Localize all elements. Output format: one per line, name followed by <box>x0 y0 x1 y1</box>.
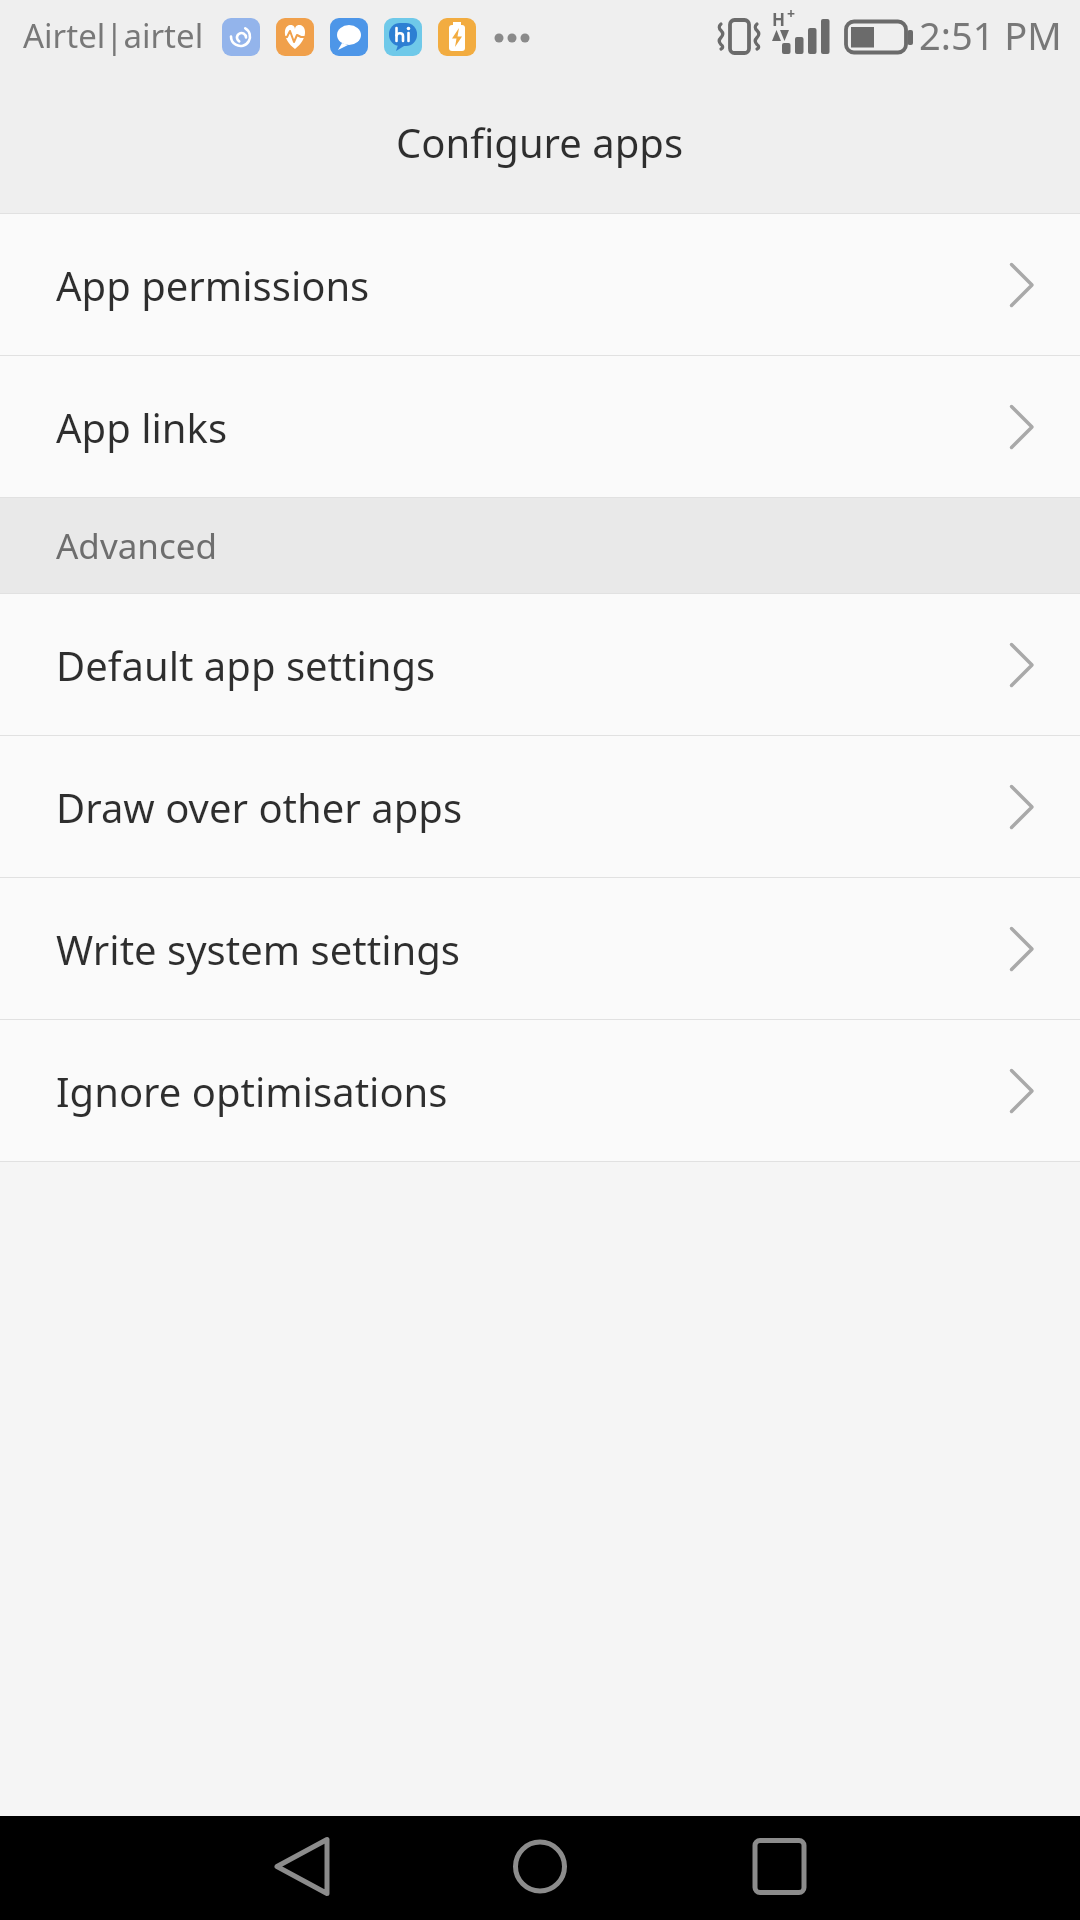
button[interactable]: App permissions <box>0 214 1080 355</box>
button[interactable]: Default app settings <box>0 594 1080 735</box>
button[interactable] <box>0 1816 360 1920</box>
staticText: H <box>772 8 786 31</box>
button[interactable]: Draw over other apps <box>0 736 1080 877</box>
staticText: App permissions <box>56 258 370 312</box>
staticText: + <box>787 4 796 23</box>
staticText: 2:51 PM <box>919 9 1062 61</box>
button[interactable]: Write system settings <box>0 878 1080 1019</box>
button[interactable]: App links <box>0 356 1080 497</box>
staticText: Write system settings <box>56 922 460 976</box>
button[interactable] <box>360 1816 720 1920</box>
staticText: Default app settings <box>56 638 436 692</box>
button[interactable]: Ignore optimisations <box>0 1020 1080 1161</box>
staticText: Advanced <box>56 522 218 570</box>
staticText: Ignore optimisations <box>56 1064 448 1118</box>
staticText: Airtel|airtel <box>23 13 204 58</box>
button[interactable] <box>720 1816 1080 1920</box>
staticText: Draw over other apps <box>56 780 463 834</box>
staticText: Configure apps <box>396 115 684 169</box>
staticText: App links <box>56 400 228 454</box>
